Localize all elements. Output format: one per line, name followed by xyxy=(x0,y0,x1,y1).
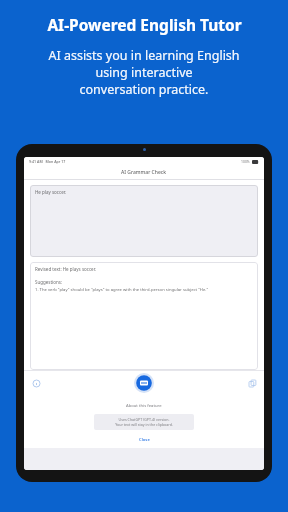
staticText: 1. The verb "play" should be "plays" to … xyxy=(35,287,209,293)
staticText: He play soccer. xyxy=(35,189,67,195)
button[interactable]: He play soccer. xyxy=(30,185,258,257)
button[interactable]: Info xyxy=(30,377,42,389)
staticText: Uses ChatGPT (GPT-4) version. Your text … xyxy=(115,417,173,427)
staticText: AI-Powered English Tutor xyxy=(47,14,242,35)
staticText: About this feature xyxy=(126,403,162,409)
staticText: 9:41 AM Mon Apr 17 xyxy=(29,159,66,164)
staticText: AI assists you in learning English using… xyxy=(48,47,240,98)
staticText: AI Grammar Check xyxy=(121,169,167,176)
staticText: Close xyxy=(139,437,150,443)
button[interactable]: Copy xyxy=(246,377,258,389)
staticText: Suggestions: xyxy=(35,279,63,285)
button[interactable]: Open keyboard xyxy=(133,372,155,394)
button[interactable]: Close xyxy=(133,436,156,444)
staticText: 100% xyxy=(241,159,250,164)
staticText: Revised text: He plays soccer. xyxy=(35,266,96,272)
